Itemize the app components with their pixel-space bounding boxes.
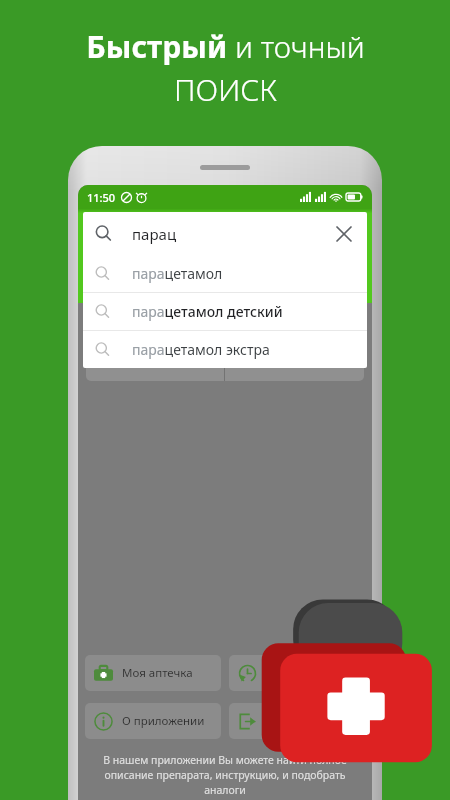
button[interactable]: О приложении xyxy=(85,703,221,739)
button[interactable]: Диклофенак xyxy=(225,303,364,381)
staticText: 11:50 xyxy=(87,190,116,205)
staticText: Быстрый и точный xyxy=(86,26,365,67)
other: Search xyxy=(95,225,112,242)
staticText: парацетамол детский xyxy=(132,302,283,321)
staticText: парацетамол экстра xyxy=(132,340,270,359)
button[interactable]: Ис xyxy=(229,655,365,691)
button[interactable]: Вы xyxy=(229,703,365,739)
other: First aid kit xyxy=(258,596,443,771)
staticText: Моя аптечка xyxy=(122,665,193,681)
staticText: Вы xyxy=(266,713,283,729)
staticText: ПОИСК xyxy=(174,69,277,110)
staticText: парацетамол xyxy=(132,264,223,283)
staticText: О приложении xyxy=(122,713,205,729)
staticText: парац xyxy=(132,224,177,244)
button[interactable]: Search xyxy=(83,212,367,255)
button[interactable]: парацетамол xyxy=(83,255,367,292)
staticText: Ис xyxy=(266,665,281,681)
button[interactable]: парацетамол детский xyxy=(83,293,367,330)
button[interactable]: Вольтарен xyxy=(86,303,224,381)
staticText: Вольтарен xyxy=(121,311,189,329)
button[interactable]: Clear xyxy=(333,223,355,245)
button[interactable]: Моя аптечка xyxy=(85,655,221,691)
staticText: 46₽ xyxy=(283,354,306,372)
staticText: 274₽ xyxy=(140,354,170,372)
staticText: В нашем приложении Вы можете найти полно… xyxy=(86,753,364,797)
staticText: Диклофенак xyxy=(254,311,335,329)
button[interactable]: парацетамол экстра xyxy=(83,331,367,368)
